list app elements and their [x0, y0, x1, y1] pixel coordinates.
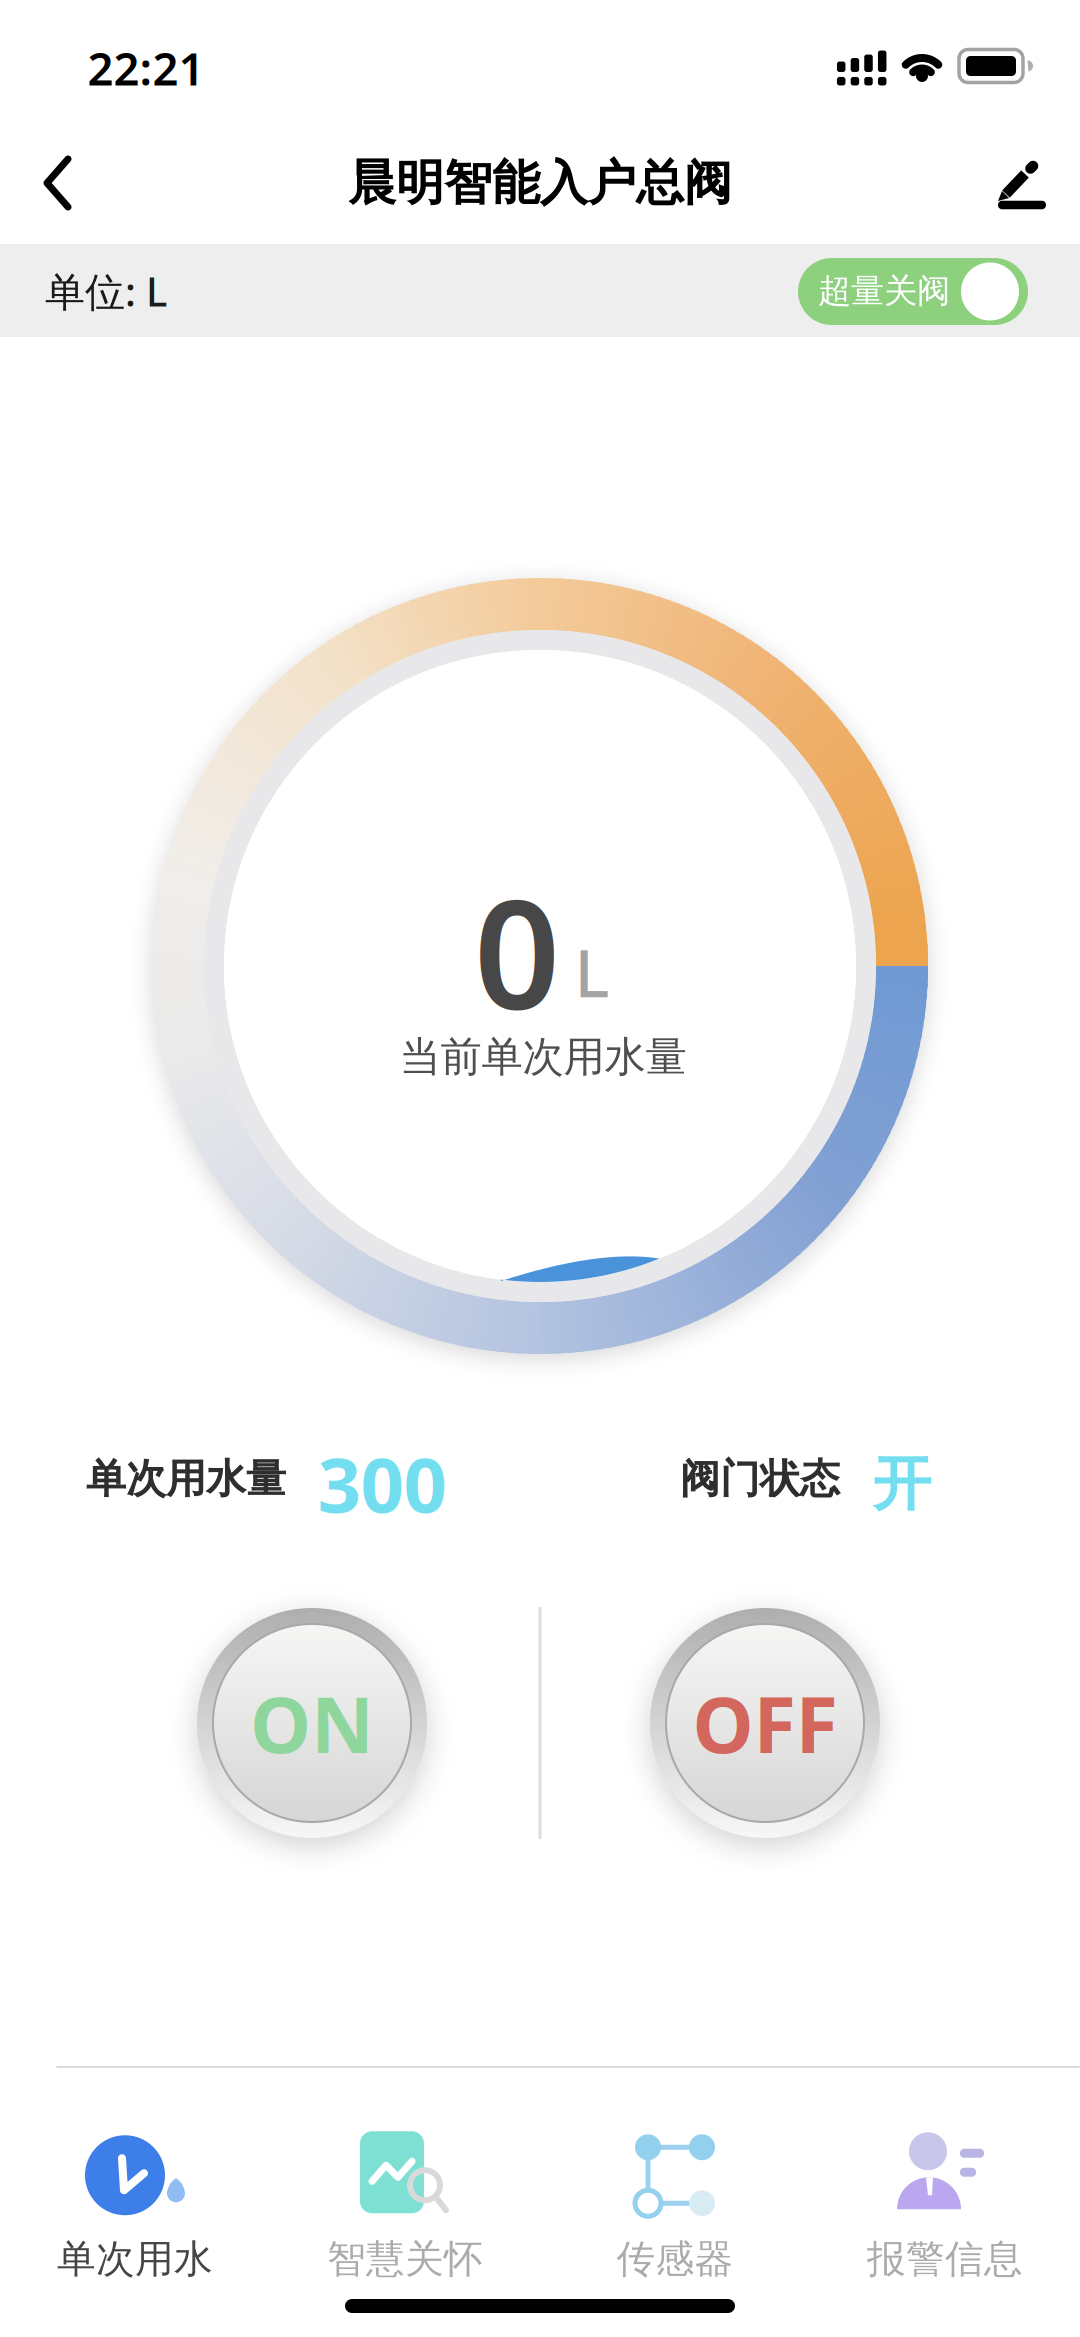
staticText: 单位: L — [45, 264, 167, 317]
button[interactable]: 超量关阀 — [798, 258, 1028, 325]
button[interactable]: 传感器 — [550, 2118, 800, 2288]
staticText: 22:21 — [87, 38, 204, 98]
staticText: 传感器 — [616, 2235, 733, 2283]
button[interactable]: 报警信息 — [820, 2118, 1070, 2288]
staticText: OFF — [692, 1672, 837, 1774]
staticText: 智慧关怀 — [327, 2235, 483, 2283]
button[interactable]: Edit — [997, 153, 1047, 209]
staticText: 300 — [317, 1432, 446, 1533]
button[interactable]: OFF — [650, 1608, 880, 1838]
button[interactable]: ON — [197, 1608, 427, 1838]
staticText: L — [574, 929, 609, 1015]
staticText: 超量关阀 — [818, 270, 950, 311]
button[interactable]: 智慧关怀 — [280, 2118, 530, 2288]
staticText: 晨明智能入户总阀 — [348, 153, 732, 212]
staticText: 0 — [474, 851, 560, 1051]
staticText: 报警信息 — [867, 2235, 1023, 2283]
staticText: 阀门状态 — [680, 1454, 840, 1503]
staticText: 当前单次用水量 — [399, 1032, 686, 1082]
staticText: 开 — [872, 1448, 931, 1520]
staticText: 单次用水量 — [86, 1454, 286, 1503]
button[interactable]: 单次用水 — [10, 2118, 260, 2288]
button[interactable]: Back — [44, 158, 72, 208]
staticText: 单次用水 — [57, 2235, 213, 2283]
staticText: ON — [250, 1672, 374, 1774]
